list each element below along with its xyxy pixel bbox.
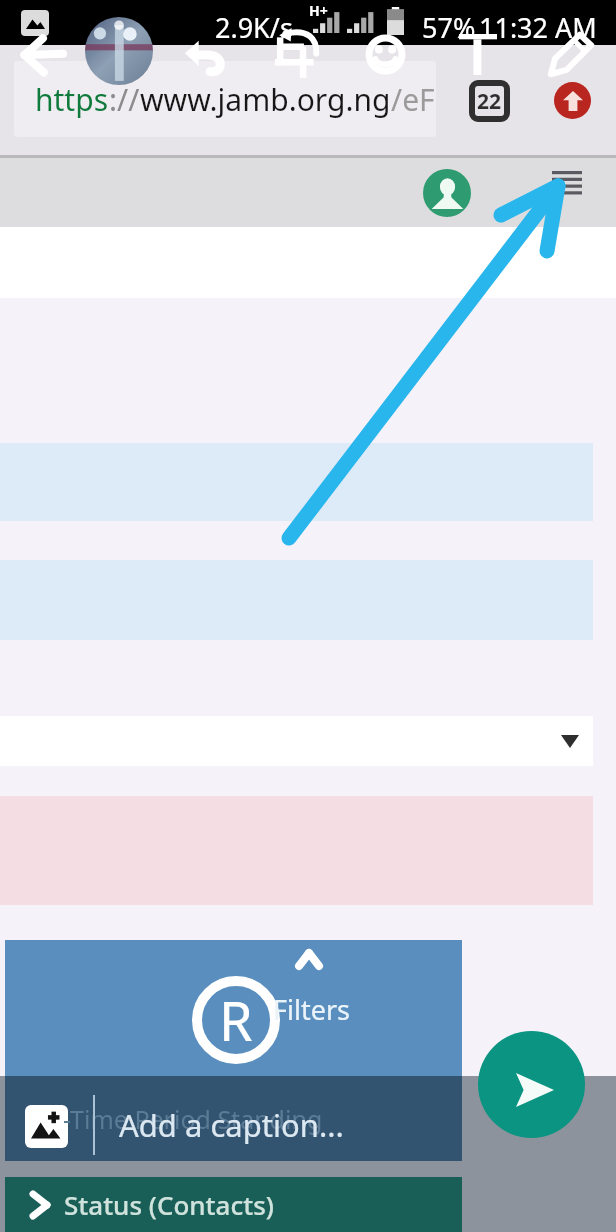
button[interactable]: Menu xyxy=(552,170,582,196)
staticText: 2.9K/s xyxy=(215,9,293,46)
staticText: R xyxy=(219,983,253,1057)
button[interactable]: Crop xyxy=(274,28,318,80)
staticText: https xyxy=(35,79,109,120)
button[interactable]: Add photo xyxy=(5,1076,462,1161)
staticText: :// xyxy=(109,79,140,120)
button[interactable]: Text xyxy=(459,34,497,75)
button[interactable]: Back xyxy=(22,36,64,74)
button[interactable]: Draw xyxy=(549,32,593,76)
button[interactable]: Tabs, 22 open xyxy=(472,83,507,119)
staticText: -Time Period Standing xyxy=(63,1102,323,1136)
button[interactable]: Add photo xyxy=(25,1105,68,1148)
staticText: H+ xyxy=(309,1,328,20)
staticText: 11:32 AM xyxy=(479,9,597,46)
staticText: Filters xyxy=(273,991,351,1028)
button[interactable]: https xyxy=(14,61,436,137)
button[interactable]: Speed dial xyxy=(554,82,591,119)
button[interactable]: Undo xyxy=(185,38,223,72)
button[interactable]: Gallery xyxy=(21,10,49,36)
staticText: /eF xyxy=(391,79,435,120)
staticText: 57% xyxy=(422,9,476,46)
button[interactable]: Send xyxy=(478,1031,585,1138)
button[interactable]: Status (Contacts) xyxy=(5,1177,462,1232)
staticText: 22 xyxy=(477,87,502,116)
staticText: www.jamb.org.ng xyxy=(140,79,391,120)
button[interactable]: Sticker xyxy=(365,34,406,75)
button[interactable]: Profile photo xyxy=(85,17,153,85)
button[interactable] xyxy=(0,716,593,766)
staticText: Status (Contacts) xyxy=(64,1187,274,1222)
staticText: Add a caption... xyxy=(119,1104,344,1146)
button[interactable]: Account xyxy=(423,169,471,217)
